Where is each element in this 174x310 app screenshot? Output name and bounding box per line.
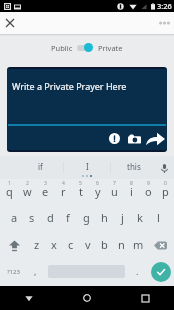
staticText: r	[61, 184, 66, 199]
button[interactable]: a	[6, 205, 23, 232]
button[interactable]: if	[17, 156, 63, 179]
button[interactable]: 7	[106, 179, 123, 205]
button[interactable]: Add photo	[126, 130, 143, 147]
staticText: 7	[113, 180, 116, 187]
button[interactable]: More options	[155, 14, 173, 32]
staticText: if	[38, 161, 43, 172]
button[interactable]: Recent apps	[116, 286, 174, 310]
staticText: 9	[147, 180, 150, 187]
button[interactable]: this	[111, 156, 157, 179]
staticText: I	[86, 161, 89, 172]
button[interactable]: d	[41, 205, 59, 232]
button[interactable]: z	[28, 232, 45, 259]
staticText: ?123	[7, 268, 20, 276]
staticText: t	[79, 184, 83, 199]
button[interactable]: g	[77, 205, 95, 232]
staticText: x	[51, 237, 57, 252]
button[interactable]: 3	[36, 179, 54, 205]
button[interactable]: ,	[26, 259, 45, 286]
staticText: z	[34, 237, 40, 252]
button[interactable]: 5	[72, 179, 89, 205]
staticText: 3:26	[157, 1, 172, 11]
button[interactable]: h	[95, 205, 113, 232]
button[interactable]: 4	[54, 179, 72, 205]
button[interactable]: v	[79, 232, 96, 259]
button[interactable]: m	[130, 232, 147, 259]
button[interactable]: 8	[123, 179, 140, 205]
staticText: a	[11, 210, 18, 225]
staticText: 6	[96, 180, 99, 187]
staticText: y	[95, 184, 101, 199]
staticText: f	[66, 210, 70, 225]
staticText: ,	[34, 265, 37, 277]
staticText: u	[111, 184, 118, 199]
staticText: e	[42, 184, 49, 199]
staticText: v	[85, 237, 91, 252]
button[interactable]: f	[59, 205, 77, 232]
button[interactable]: s	[23, 205, 41, 232]
button[interactable]: 0	[157, 179, 174, 205]
staticText: d	[47, 210, 54, 225]
button[interactable]: Enter	[147, 259, 174, 286]
staticText: 0	[164, 180, 167, 187]
staticText: 3	[44, 180, 47, 187]
staticText: 2	[26, 180, 29, 187]
staticText: s	[29, 210, 35, 225]
button[interactable]	[77, 42, 93, 53]
staticText: 5	[79, 180, 82, 187]
staticText: p	[162, 184, 169, 199]
button[interactable]: Home	[58, 286, 116, 310]
button[interactable]: c	[62, 232, 79, 259]
button[interactable]: .	[128, 259, 147, 286]
button[interactable]: Voice input	[157, 161, 171, 175]
button[interactable]: l	[149, 205, 167, 232]
button[interactable]: 2	[18, 179, 36, 205]
button[interactable]: Space	[45, 259, 128, 286]
staticText: .	[136, 265, 139, 277]
button[interactable]: Share	[145, 128, 166, 149]
button[interactable]: I	[64, 156, 110, 179]
staticText: m	[133, 237, 144, 252]
staticText: i	[130, 184, 133, 199]
staticText: o	[145, 184, 152, 199]
staticText: h	[101, 210, 108, 225]
staticText: Public	[51, 43, 73, 53]
button[interactable]: 9	[140, 179, 157, 205]
staticText: j	[121, 210, 124, 225]
staticText: 1	[8, 180, 11, 187]
staticText: c	[68, 237, 74, 252]
staticText: w	[23, 184, 32, 199]
button[interactable]: 1	[0, 179, 18, 205]
staticText: k	[137, 210, 143, 225]
button[interactable]: b	[96, 232, 113, 259]
button[interactable]: n	[113, 232, 130, 259]
button[interactable]: k	[131, 205, 149, 232]
staticText: this	[127, 161, 141, 172]
button[interactable]: Shift	[0, 232, 28, 259]
staticText: g	[83, 210, 90, 225]
staticText: Private	[98, 43, 123, 53]
button[interactable]: 6	[89, 179, 106, 205]
staticText: q	[6, 184, 13, 199]
staticText: n	[118, 237, 125, 252]
button[interactable]: Info	[107, 131, 122, 146]
staticText: l	[157, 210, 160, 225]
button[interactable]: x	[45, 232, 62, 259]
button[interactable]: Back	[0, 286, 58, 310]
button[interactable]: Close	[1, 14, 19, 32]
button[interactable]: j	[113, 205, 131, 232]
button[interactable]: Backspace	[147, 232, 174, 259]
staticText: Write a Private Prayer Here	[12, 80, 127, 92]
button[interactable]: ?123	[0, 259, 26, 286]
staticText: b	[101, 237, 108, 252]
staticText: 4	[62, 180, 65, 187]
staticText: 8	[130, 180, 133, 187]
